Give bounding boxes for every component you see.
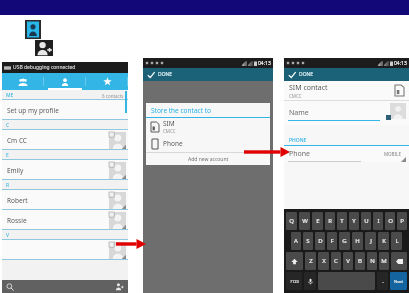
button[interactable]: Emily (2, 160, 128, 180)
staticText: R (328, 217, 332, 225)
staticText: E (6, 152, 9, 159)
button[interactable]: Tab (86, 73, 128, 90)
button[interactable]: Z (305, 252, 316, 270)
button[interactable]: Backspace (391, 252, 407, 270)
button[interactable]: SIM contact (289, 81, 404, 100)
staticText: D (318, 237, 323, 245)
button[interactable]: B (355, 252, 365, 270)
staticText: CMCC (163, 128, 176, 134)
staticText: C (334, 257, 338, 265)
button[interactable]: Robert (2, 190, 128, 210)
button[interactable]: Phone (146, 135, 270, 152)
button[interactable]: C (331, 252, 341, 270)
staticText: R (6, 182, 10, 189)
staticText: . (382, 277, 384, 285)
button[interactable]: DONE (284, 68, 409, 81)
button[interactable]: K (378, 232, 389, 250)
button[interactable]: Cm CC (2, 130, 128, 150)
button[interactable]: Tab (2, 73, 44, 90)
button[interactable]: X (318, 252, 329, 270)
staticText: Set up my profile (7, 106, 59, 115)
button[interactable]: I (373, 212, 383, 230)
staticText: C (6, 122, 10, 129)
button[interactable]: Y (349, 212, 359, 230)
button[interactable]: T (337, 212, 347, 230)
staticText: Store the contact to (151, 106, 211, 115)
staticText: G (342, 237, 347, 245)
staticText: Add new account (188, 156, 229, 163)
staticText: 04:13 (394, 60, 407, 67)
button[interactable]: M (379, 252, 389, 270)
button[interactable]: SIM (146, 118, 270, 135)
button[interactable]: V (343, 252, 353, 270)
button[interactable]: R (325, 212, 335, 230)
staticText: I (377, 217, 380, 225)
button[interactable]: L (391, 232, 402, 250)
staticText: SIM contact (289, 83, 328, 93)
staticText: X (322, 257, 326, 265)
staticText: Name (289, 108, 309, 118)
staticText: Y (352, 217, 356, 225)
staticText: E (316, 217, 320, 225)
button[interactable] (2, 240, 128, 260)
staticText: Cm CC (7, 136, 27, 145)
button[interactable]: E (312, 212, 323, 230)
button[interactable]: Rossie (2, 210, 128, 230)
staticText: 6 contacts (102, 93, 124, 99)
button[interactable]: F (327, 232, 337, 250)
staticText: Phone (163, 139, 183, 148)
staticText: ?123 (290, 279, 299, 284)
staticText: K (382, 237, 386, 245)
button[interactable]: A (291, 232, 301, 250)
button[interactable]: Add new account (146, 153, 270, 165)
button[interactable]: N (367, 252, 377, 270)
staticText: Robert (7, 196, 28, 205)
staticText: 04:13 (258, 60, 271, 67)
button[interactable]: Symbols (286, 272, 302, 290)
button[interactable]: Search (2, 280, 65, 293)
button[interactable]: U (361, 212, 371, 230)
staticText: CMCC (289, 93, 302, 99)
button[interactable]: O (385, 212, 395, 230)
button[interactable]: D (315, 232, 325, 250)
button[interactable]: S (303, 232, 313, 250)
staticText: Rossie (7, 216, 27, 225)
button[interactable]: Add contact app (35, 40, 53, 56)
staticText: V (6, 232, 10, 239)
staticText: B (358, 257, 362, 265)
staticText: U (364, 217, 369, 225)
staticText: L (395, 237, 399, 245)
staticText: T (340, 217, 344, 225)
staticText: ME (6, 92, 14, 99)
button[interactable]: H (352, 232, 363, 250)
button[interactable]: J (365, 232, 376, 250)
button[interactable]: Q (286, 212, 297, 230)
staticText: A (294, 237, 298, 245)
button[interactable]: Period (377, 272, 388, 290)
staticText: USB debugging connected (13, 64, 76, 71)
staticText: O (388, 217, 393, 225)
staticText: Emily (7, 166, 24, 175)
staticText: SIM (163, 119, 175, 128)
staticText: DONE (299, 71, 314, 78)
button[interactable]: Set up my profile (2, 100, 128, 120)
staticText: P (400, 217, 404, 225)
button[interactable]: DONE (143, 68, 273, 81)
button[interactable]: W (299, 212, 310, 230)
button[interactable]: Add contact (65, 280, 128, 293)
button[interactable]: Voice input (304, 272, 316, 290)
staticText: V (346, 257, 350, 265)
staticText: PHONE (289, 137, 307, 144)
staticText: MOBILE (384, 151, 401, 157)
button[interactable]: Next (390, 272, 407, 290)
button[interactable]: G (339, 232, 350, 250)
staticText: Next (394, 279, 403, 284)
staticText: Z (309, 257, 313, 265)
button[interactable]: P (397, 212, 407, 230)
button[interactable]: Contacts app (25, 20, 41, 39)
button[interactable]: Shift (286, 252, 303, 270)
staticText: Q (289, 217, 294, 225)
button[interactable]: Contacts tab (44, 73, 86, 90)
staticText: DONE (158, 71, 173, 78)
